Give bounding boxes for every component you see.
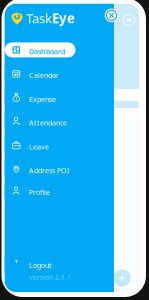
staticText: Expense bbox=[29, 94, 56, 104]
button[interactable]: Leave bbox=[5, 137, 109, 152]
button[interactable]: Dashboard bbox=[5, 42, 75, 57]
staticText: Dashboard bbox=[29, 47, 65, 56]
button[interactable]: Close menu bbox=[104, 8, 118, 22]
staticText: Profile bbox=[29, 187, 50, 197]
button[interactable]: Logout bbox=[5, 256, 109, 271]
button[interactable]: Calendar bbox=[5, 66, 109, 81]
button[interactable]: Attendance bbox=[5, 113, 109, 128]
staticText: Address POI bbox=[29, 165, 69, 175]
staticText: Logout bbox=[29, 260, 52, 270]
staticText: Task bbox=[26, 9, 52, 27]
button[interactable]: Address POI bbox=[5, 161, 109, 176]
button[interactable]: Profile bbox=[5, 183, 109, 198]
staticText: Eye bbox=[52, 9, 75, 27]
staticText: Version 2.1.1 bbox=[29, 272, 71, 282]
button[interactable]: Expense bbox=[5, 90, 109, 105]
staticText: Attendance bbox=[29, 118, 67, 127]
staticText: Calendar bbox=[29, 70, 59, 80]
staticText: Leave bbox=[29, 142, 49, 151]
